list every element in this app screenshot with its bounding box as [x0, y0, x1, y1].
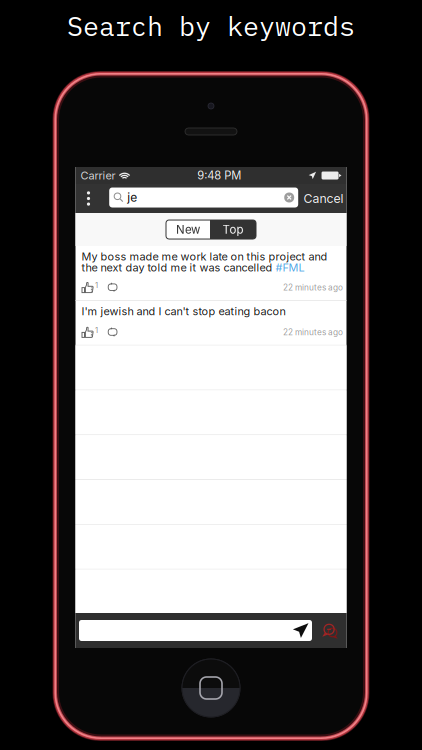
- staticText: I'm jewish and I can't stop eating bacon: [81, 305, 285, 318]
- button[interactable]: Compose message: [79, 620, 312, 641]
- staticText: Carrier: [80, 169, 115, 182]
- button[interactable]: Cancel: [303, 184, 343, 213]
- button[interactable]: I'm jewish and I can't stop eating bacon: [75, 301, 346, 345]
- button[interactable]: Top: [210, 220, 256, 239]
- staticText: New: [176, 223, 200, 236]
- staticText: the next day told me it was cancelled: [81, 261, 275, 274]
- button[interactable]: My boss made me work late on this projec…: [75, 246, 346, 300]
- staticText: je: [127, 190, 137, 205]
- button[interactable]: More options: [77, 184, 99, 213]
- staticText: 9:48 PM: [197, 169, 241, 182]
- staticText: 1: [95, 325, 98, 335]
- staticText: My boss made me work late on this projec…: [81, 250, 327, 263]
- button[interactable]: Chat: [318, 617, 342, 643]
- staticText: Search by keywords: [67, 9, 355, 43]
- staticText: Top: [222, 223, 243, 236]
- staticText: 22 minutes ago: [283, 282, 343, 292]
- staticText: 22 minutes ago: [283, 327, 343, 337]
- staticText: #FML: [275, 261, 304, 274]
- button[interactable]: New: [166, 220, 210, 239]
- staticText: Cancel: [303, 191, 343, 206]
- staticText: 1: [95, 281, 98, 290]
